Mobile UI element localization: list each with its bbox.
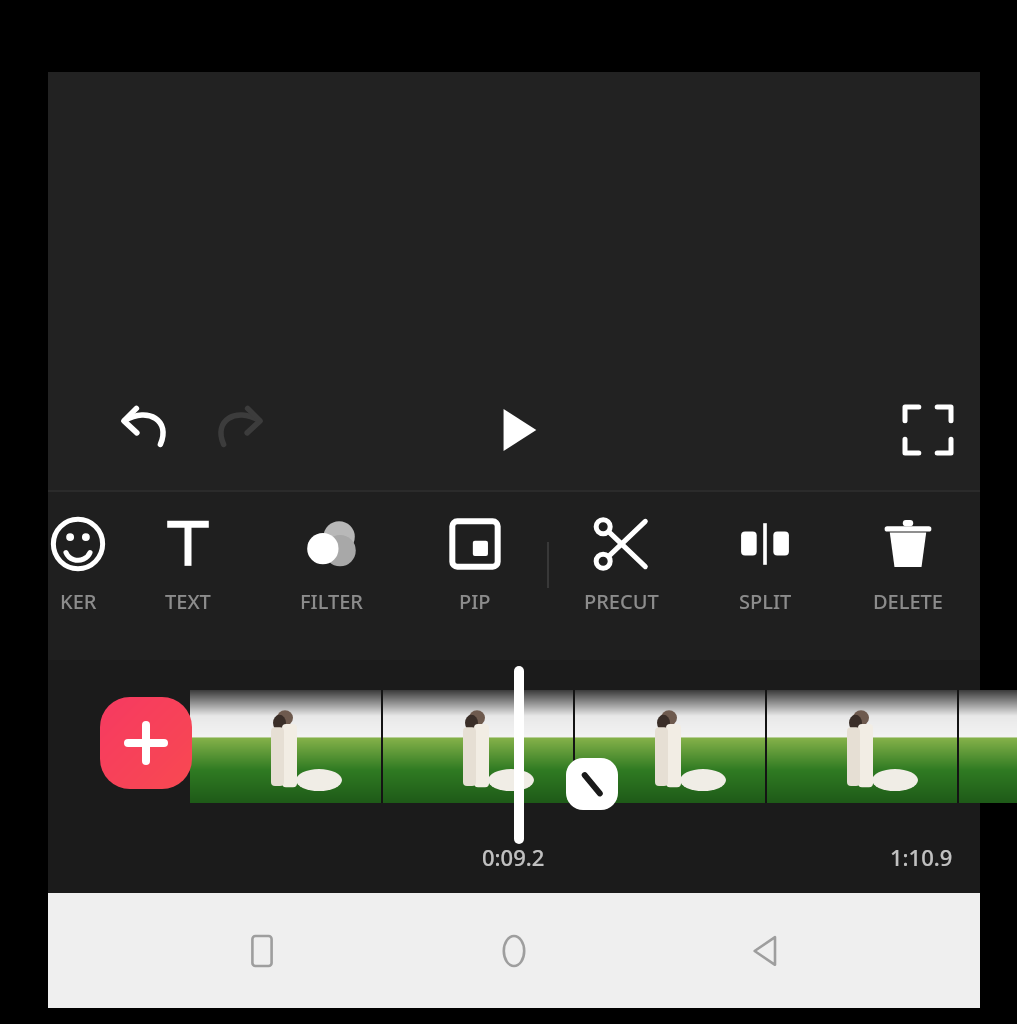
button[interactable]: KER (8, 506, 148, 646)
button[interactable]: Fullscreen (888, 390, 968, 470)
staticText: SPLIT (739, 588, 792, 615)
button[interactable]: Add clip (100, 697, 192, 789)
button[interactable]: DELETE (838, 506, 978, 646)
button[interactable]: SPLIT (695, 506, 835, 646)
staticText: FILTER (300, 588, 363, 615)
staticText: TEXT (165, 588, 211, 615)
button[interactable]: Transition (566, 758, 618, 810)
button[interactable]: Recents (224, 913, 300, 989)
staticText: DELETE (873, 588, 943, 615)
button[interactable]: Redo (198, 390, 278, 470)
staticText: 1:10.9 (890, 842, 953, 872)
staticText: PRECUT (584, 588, 659, 615)
button[interactable]: TEXT (118, 506, 258, 646)
button[interactable]: Back (728, 913, 804, 989)
staticText: 0:09.2 (482, 842, 545, 872)
button[interactable]: Play (477, 390, 557, 470)
button[interactable]: Home (476, 913, 552, 989)
staticText: KER (60, 588, 97, 615)
button[interactable]: FILTER (261, 506, 401, 646)
button[interactable]: PIP (405, 506, 545, 646)
button[interactable]: PRECUT (551, 506, 691, 646)
staticText: PIP (459, 588, 491, 615)
button[interactable]: Undo (106, 390, 186, 470)
